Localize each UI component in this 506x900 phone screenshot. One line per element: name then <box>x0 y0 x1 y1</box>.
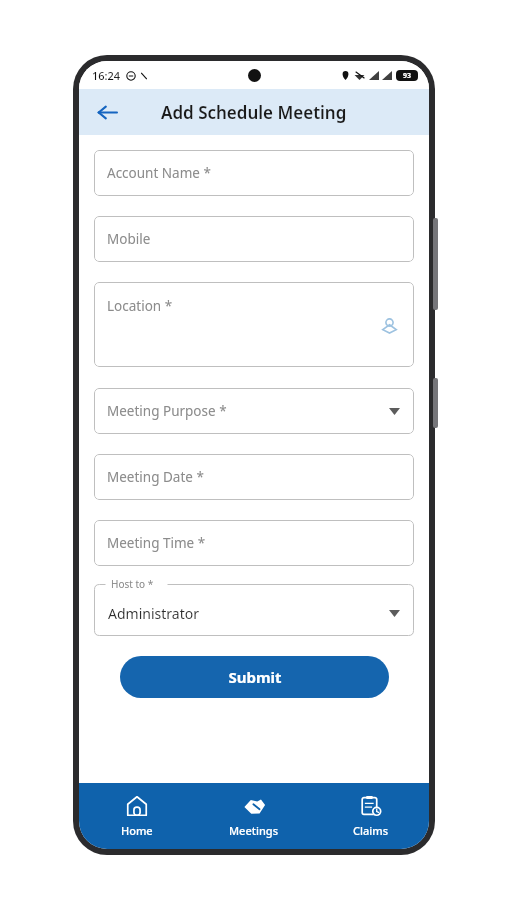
button[interactable]: Back <box>88 93 126 131</box>
button[interactable]: Meeting Purpose * <box>94 388 414 434</box>
staticText: Meetings <box>229 823 278 838</box>
staticText: 16:24 <box>92 68 121 83</box>
button[interactable]: Claims <box>312 783 429 849</box>
button[interactable]: Pick location <box>378 314 400 336</box>
staticText: Host to * <box>111 577 154 591</box>
staticText: Add Schedule Meeting <box>161 101 347 124</box>
staticText: Home <box>121 823 153 838</box>
button[interactable]: Meetings <box>195 783 312 849</box>
staticText: Account Name * <box>107 164 211 182</box>
staticText: Claims <box>353 823 388 838</box>
button[interactable]: Account Name * <box>94 150 414 196</box>
staticText: Submit <box>228 667 282 687</box>
staticText: Meeting Purpose * <box>107 402 227 420</box>
staticText: Location * <box>107 297 173 315</box>
button[interactable]: Location * <box>94 282 414 367</box>
button[interactable]: Meeting Time * <box>94 520 414 566</box>
button[interactable]: Home <box>79 783 195 849</box>
staticText: Administrator <box>108 604 199 623</box>
staticText: 93 <box>403 71 412 81</box>
staticText: Meeting Time * <box>107 534 206 552</box>
button[interactable]: Submit <box>120 656 389 698</box>
staticText: Mobile <box>107 230 151 248</box>
staticText: Meeting Date * <box>107 468 204 486</box>
button[interactable]: Mobile <box>94 216 414 262</box>
button[interactable]: Meeting Date * <box>94 454 414 500</box>
